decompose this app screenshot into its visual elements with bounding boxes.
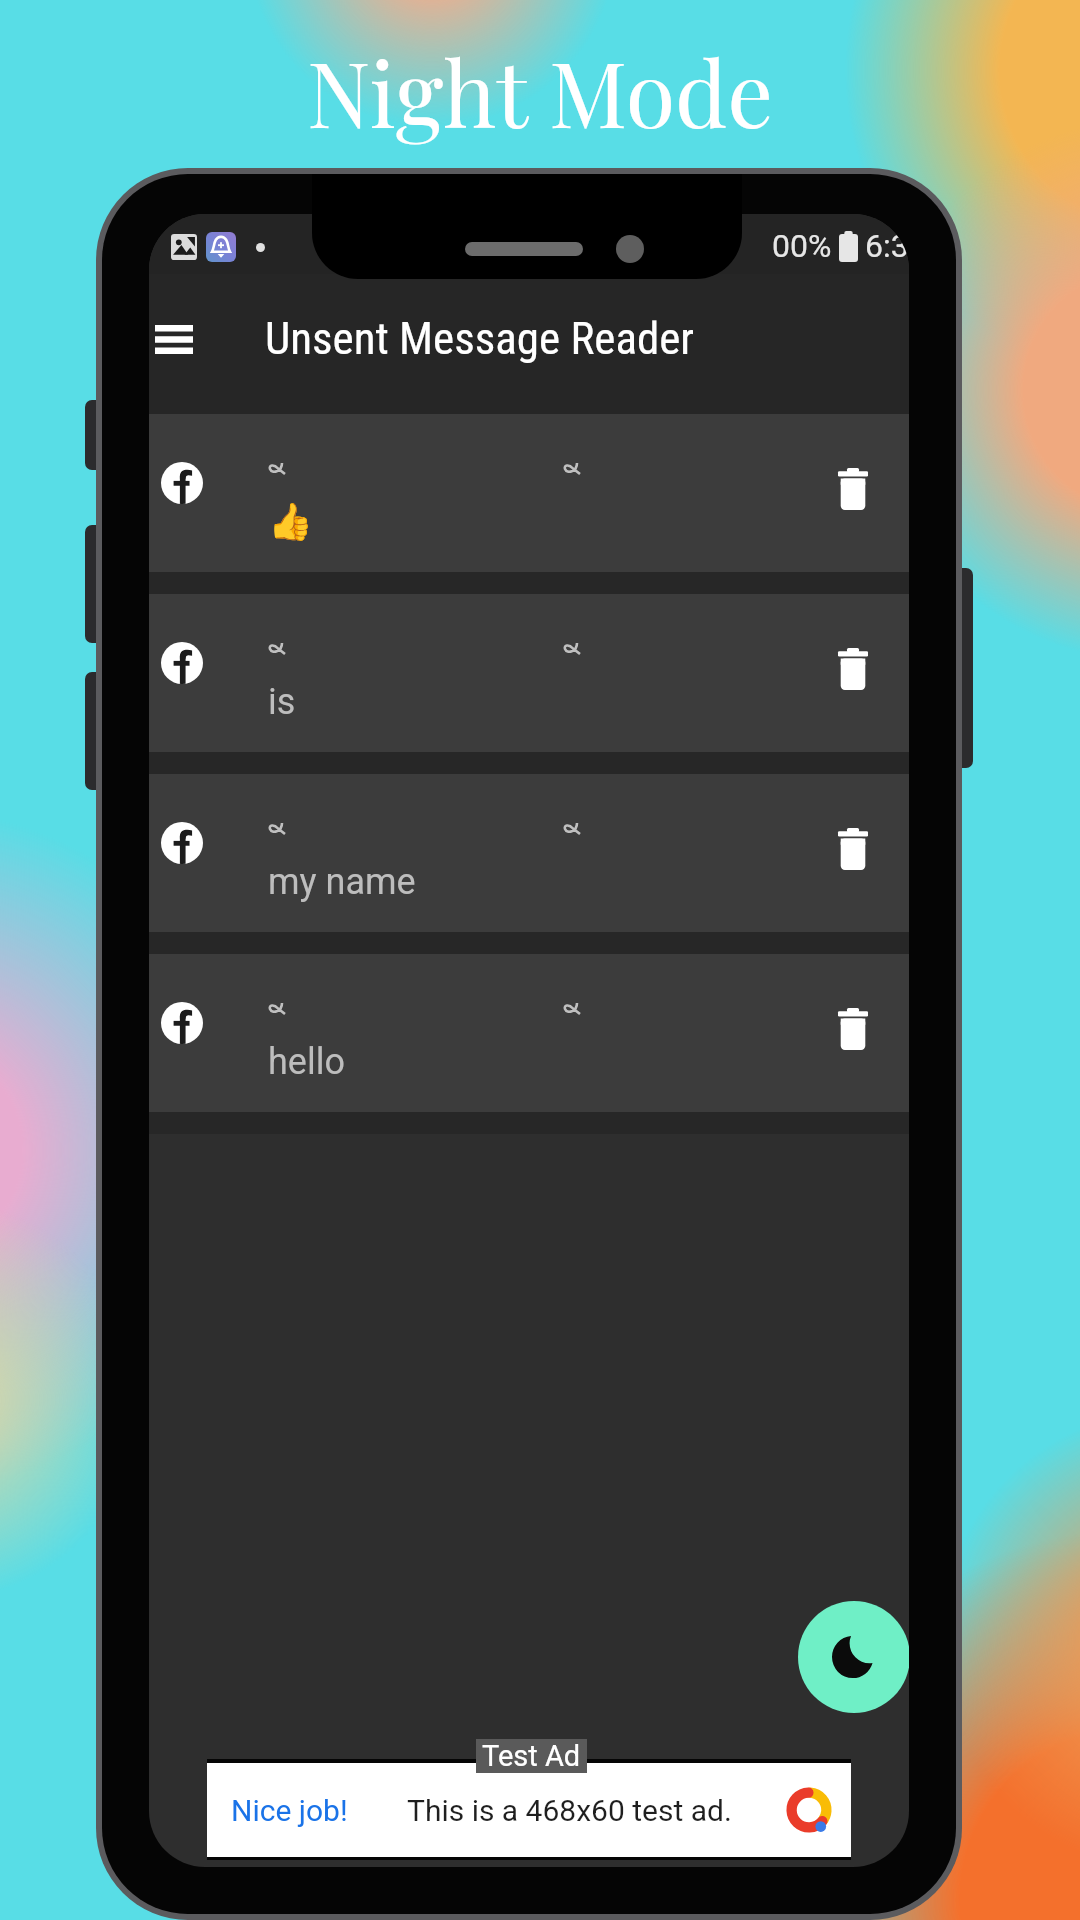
button[interactable]: Open navigation menu bbox=[149, 303, 210, 375]
staticText: hello bbox=[268, 1041, 345, 1083]
button[interactable]: Delete message bbox=[819, 995, 887, 1063]
staticText: Night Mode bbox=[307, 31, 773, 151]
button[interactable]: Toggle night mode bbox=[798, 1601, 909, 1713]
staticText: my name bbox=[268, 861, 416, 903]
staticText: This is a 468x60 test ad. bbox=[407, 1793, 732, 1828]
staticText: 6:32 p bbox=[865, 227, 909, 265]
button[interactable]: 👍 bbox=[149, 414, 909, 572]
staticText: Unsent Message Reader bbox=[265, 312, 695, 365]
staticText: Test Ad bbox=[482, 1739, 581, 1773]
staticText: Nice job! bbox=[231, 1793, 348, 1828]
staticText: 00% bbox=[772, 227, 832, 265]
button[interactable]: hello bbox=[149, 954, 909, 1112]
button[interactable]: Delete message bbox=[819, 815, 887, 883]
button[interactable]: Delete message bbox=[819, 635, 887, 703]
staticText: 👍 bbox=[268, 501, 313, 543]
staticText: is bbox=[268, 681, 296, 723]
button[interactable]: Delete message bbox=[819, 455, 887, 523]
button[interactable]: my name bbox=[149, 774, 909, 932]
button[interactable]: is bbox=[149, 594, 909, 752]
